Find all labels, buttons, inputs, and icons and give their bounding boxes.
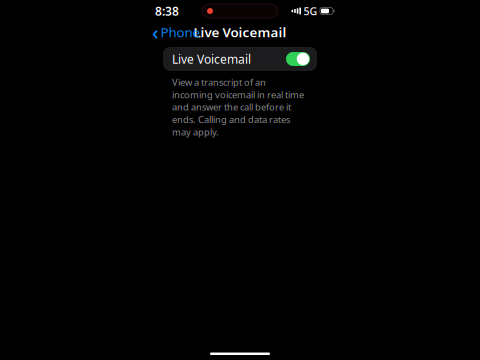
button[interactable]: ‹ (148, 16, 204, 48)
staticText: Live Voicemail (193, 23, 286, 41)
staticText: Live Voicemail (172, 51, 251, 67)
staticText: Phone (160, 23, 200, 41)
button[interactable]: Live Voicemail (163, 47, 317, 71)
staticText: 8:38 (155, 3, 179, 19)
staticText: ‹ (152, 19, 159, 45)
staticText: 5G (303, 4, 317, 18)
staticText: View a transcript of an incoming voicema… (172, 76, 304, 138)
